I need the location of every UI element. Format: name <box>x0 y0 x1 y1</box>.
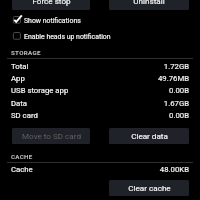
staticText: 0.00B <box>109 86 189 95</box>
staticText: 49.76MB <box>109 74 189 83</box>
button[interactable]: Total <box>0 62 200 74</box>
button[interactable]: Clear data <box>109 128 189 144</box>
button[interactable]: Clear cache <box>109 180 189 196</box>
staticText: Clear data <box>131 131 168 140</box>
staticText: CACHE <box>11 153 33 160</box>
button[interactable]: Force stop <box>12 0 90 10</box>
staticText: Cache <box>11 165 33 174</box>
button[interactable]: Data <box>0 99 200 111</box>
button[interactable]: Uninstall <box>109 0 189 10</box>
button[interactable]: App <box>0 74 200 86</box>
staticText: Force stop <box>32 0 71 5</box>
button[interactable]: Enable heads up notification <box>0 30 200 46</box>
staticText: Move to SD card <box>22 131 81 140</box>
staticText: App <box>11 74 25 83</box>
staticText: Show notifications <box>24 17 81 25</box>
button[interactable]: Move to SD card <box>12 128 90 144</box>
staticText: Total <box>11 62 29 71</box>
button[interactable]: SD card <box>0 111 200 123</box>
staticText: Clear cache <box>128 183 171 192</box>
staticText: 48.00KB <box>109 165 189 174</box>
staticText: Enable heads up notification <box>24 33 111 41</box>
button[interactable]: USB storage app <box>0 86 200 98</box>
button[interactable]: Show notifications <box>0 14 200 30</box>
staticText: Data <box>11 99 28 108</box>
staticText: 1.72GB <box>109 62 189 71</box>
staticText: Uninstall <box>133 0 165 5</box>
staticText: 1.67GB <box>109 99 189 108</box>
staticText: STORAGE <box>11 49 41 56</box>
staticText: SD card <box>11 111 38 120</box>
staticText: 0.00B <box>109 111 189 120</box>
staticText: USB storage app <box>11 86 69 95</box>
button[interactable]: Cache <box>0 165 200 177</box>
